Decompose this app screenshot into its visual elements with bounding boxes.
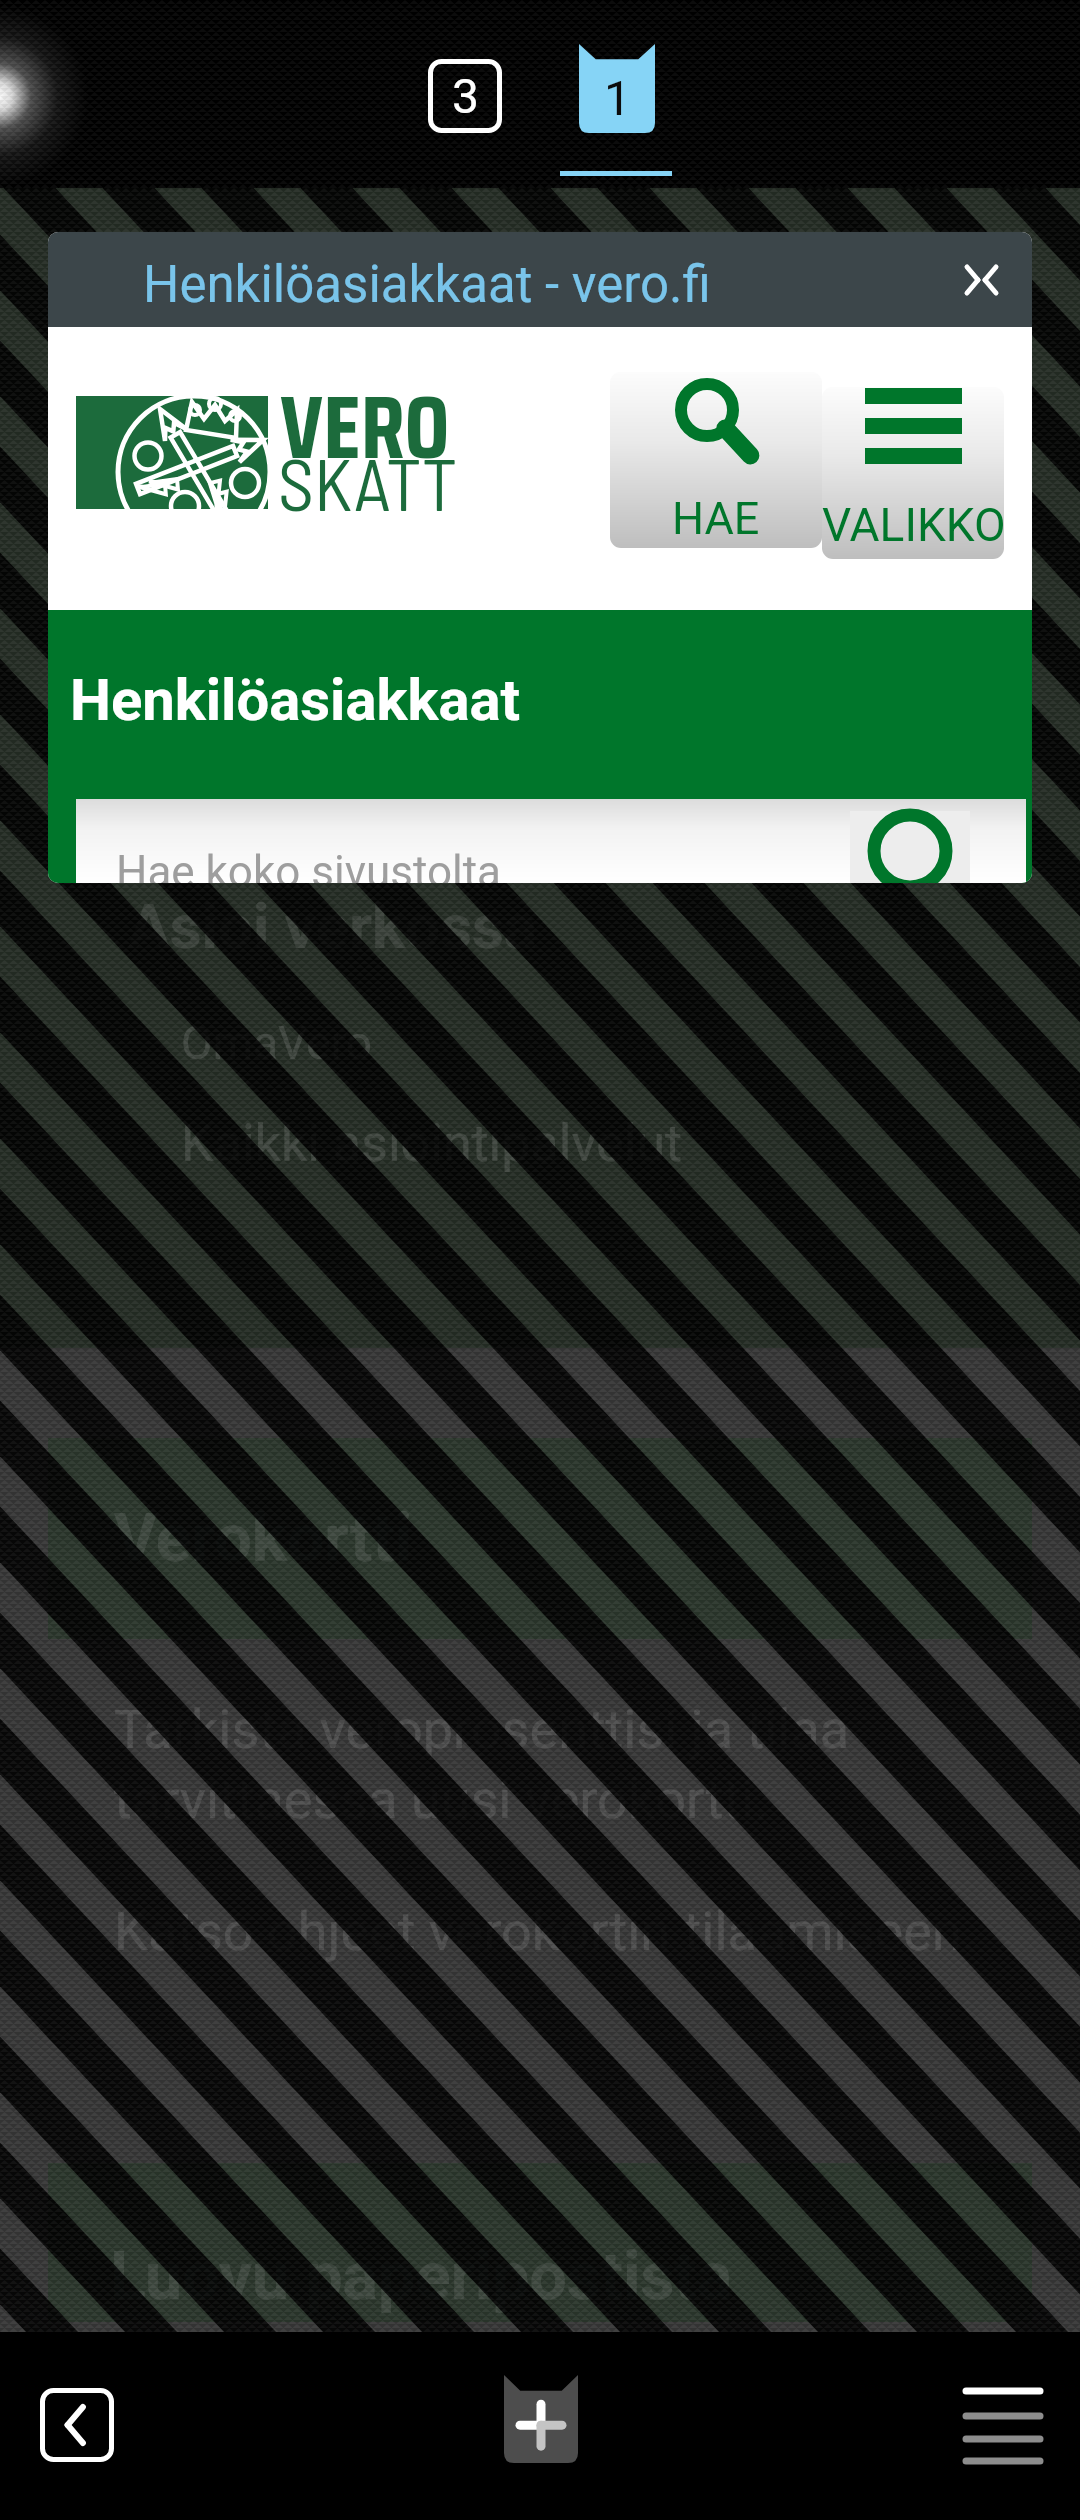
- staticText: 1: [604, 70, 631, 126]
- staticText: Katso ohjeet verokortin tilaamiseen.: [114, 1900, 976, 1963]
- staticText: VERO: [280, 357, 450, 477]
- button[interactable]: Henkilöasiakkaat - vero.fi: [48, 232, 1032, 883]
- staticText: Hae koko sivustolta: [116, 846, 502, 883]
- staticText: tarvittaessa uusi verokortti.: [114, 1768, 769, 1831]
- button[interactable]: Back: [40, 2388, 114, 2462]
- staticText: 3: [452, 68, 479, 124]
- button[interactable]: VALIKKO: [822, 387, 1004, 559]
- staticText: OmaVero: [181, 1016, 373, 1070]
- button[interactable]: 3: [428, 59, 502, 133]
- staticText: VALIKKO: [822, 498, 1004, 552]
- staticText: HAE: [672, 492, 760, 545]
- staticText: Tarkista veroprosenttisi ja tilaa: [114, 1698, 850, 1761]
- staticText: Henkilöasiakkaat - vero.fi: [143, 255, 711, 315]
- staticText: SKATT: [278, 439, 458, 525]
- staticText: Verokortti: [114, 1500, 413, 1577]
- button[interactable]: 1: [579, 44, 655, 133]
- button[interactable]: Menu: [966, 2389, 1040, 2463]
- button[interactable]: Close tab: [950, 249, 1012, 311]
- staticText: Luovu paperipostista: [110, 2238, 732, 2315]
- staticText: Henkilöasiakkaat: [70, 666, 521, 734]
- button[interactable]: New tab: [504, 2375, 578, 2463]
- button[interactable]: HAE: [610, 372, 822, 548]
- staticText: Asioi verkossa: [128, 890, 537, 963]
- staticText: Kaikki asiointipalvelut: [181, 1113, 683, 1174]
